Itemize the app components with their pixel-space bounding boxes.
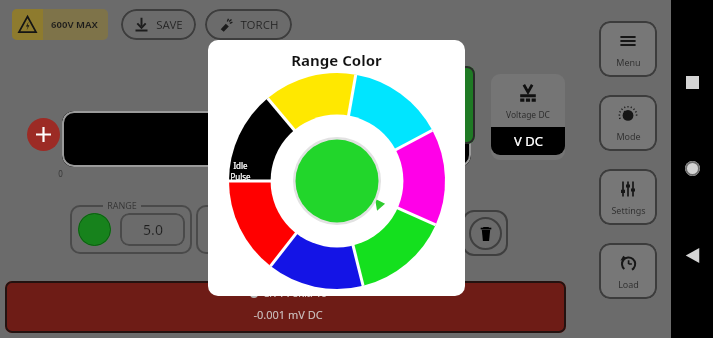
staticText: 5.0 — [143, 220, 163, 239]
staticText: Menu — [616, 56, 641, 68]
staticText: 600V MAX — [51, 18, 98, 31]
staticText: -0.001 mV DC — [253, 307, 323, 322]
button[interactable]: 600V MAX — [12, 9, 108, 40]
staticText: TORCH — [240, 17, 279, 33]
staticText: V DC — [514, 132, 543, 150]
button[interactable]: CH 1 PoKitP10 — [5, 281, 566, 333]
button[interactable]: Voltage DC — [491, 74, 565, 160]
button[interactable]: TORCH — [205, 9, 292, 40]
staticText: CH 1 PoKitP10 — [263, 287, 327, 300]
button[interactable]: Load — [599, 243, 657, 299]
staticText: Mode — [616, 130, 641, 142]
staticText: Idle — [233, 160, 248, 171]
button[interactable]: Delete — [462, 210, 508, 256]
button[interactable]: Add channel — [27, 118, 60, 151]
staticText: Voltage DC — [506, 109, 550, 121]
button[interactable]: IDLE — [62, 111, 471, 167]
staticText: 0 — [58, 168, 63, 179]
button[interactable]: SAVE — [121, 9, 196, 40]
button[interactable]: Back — [685, 248, 700, 263]
staticText: SAVE — [156, 17, 183, 33]
button[interactable]: Settings — [599, 169, 657, 225]
staticText: IDLE — [230, 135, 244, 144]
staticText: PULSE — [227, 144, 247, 153]
staticText: Pulse — [230, 171, 251, 182]
button[interactable]: Menu — [599, 21, 657, 77]
staticText: Range Color — [291, 50, 382, 70]
button[interactable]: Home — [685, 161, 700, 176]
staticText: Settings — [611, 204, 646, 216]
button[interactable]: 5.0 — [120, 213, 185, 246]
button[interactable]: Range color — [78, 213, 111, 246]
button[interactable]: Mode — [599, 95, 657, 151]
staticText: RANGE — [107, 199, 137, 211]
staticText: Load — [618, 278, 639, 290]
